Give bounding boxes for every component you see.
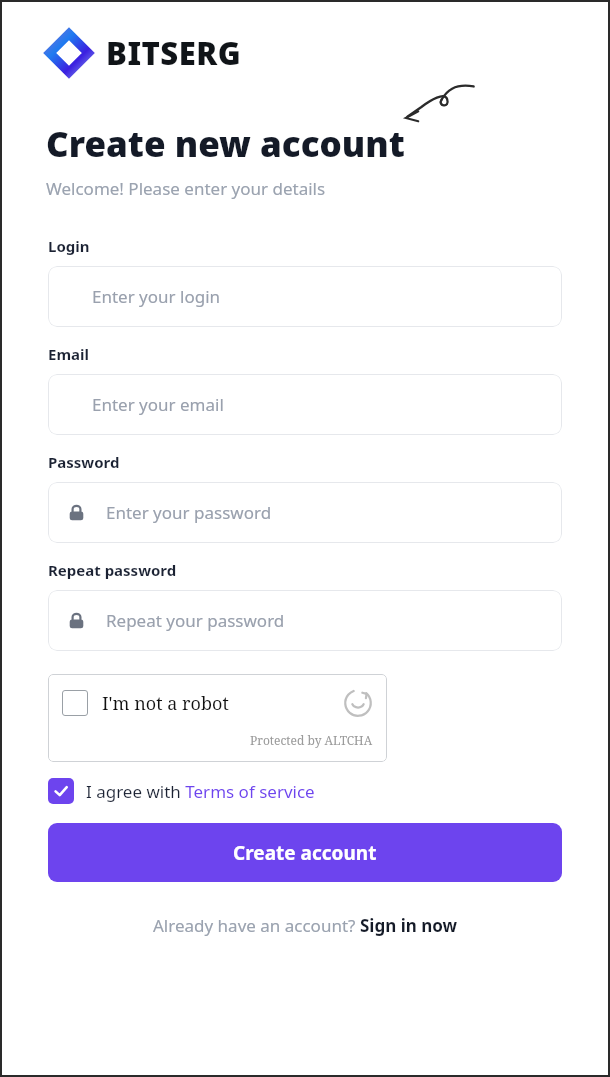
staticText: Already have an account? — [153, 914, 360, 937]
button[interactable]: Refresh captcha — [343, 688, 373, 718]
staticText: Create new account — [46, 120, 405, 168]
button[interactable]: Enter your password — [48, 482, 562, 543]
staticText: Enter your email — [92, 393, 224, 416]
staticText: Protected by ALTCHA — [250, 732, 373, 748]
staticText: I agree with Terms of service — [86, 780, 315, 803]
button[interactable]: Already have an account? — [153, 914, 458, 937]
staticText: Create account — [233, 840, 377, 866]
staticText: Email — [48, 344, 89, 364]
button[interactable]: Enter your email — [48, 374, 562, 435]
staticText: Sign in now — [360, 914, 458, 937]
button[interactable]: I'm not a robot — [48, 674, 387, 762]
button[interactable]: Enter your login — [48, 266, 562, 327]
button[interactable]: Repeat your password — [48, 590, 562, 651]
staticText: Login — [48, 236, 90, 256]
staticText: Enter your login — [92, 285, 221, 308]
staticText: Enter your password — [106, 501, 272, 524]
button[interactable]: I agree with Terms of service — [48, 778, 315, 804]
staticText: Welcome! Please enter your details — [46, 177, 326, 200]
staticText: I'm not a robot — [102, 691, 229, 716]
staticText: BITSERG — [106, 32, 242, 74]
staticText: Repeat password — [48, 560, 177, 580]
staticText: Repeat your password — [106, 609, 285, 632]
button[interactable]: Create account — [48, 823, 562, 882]
staticText: Password — [48, 452, 120, 472]
